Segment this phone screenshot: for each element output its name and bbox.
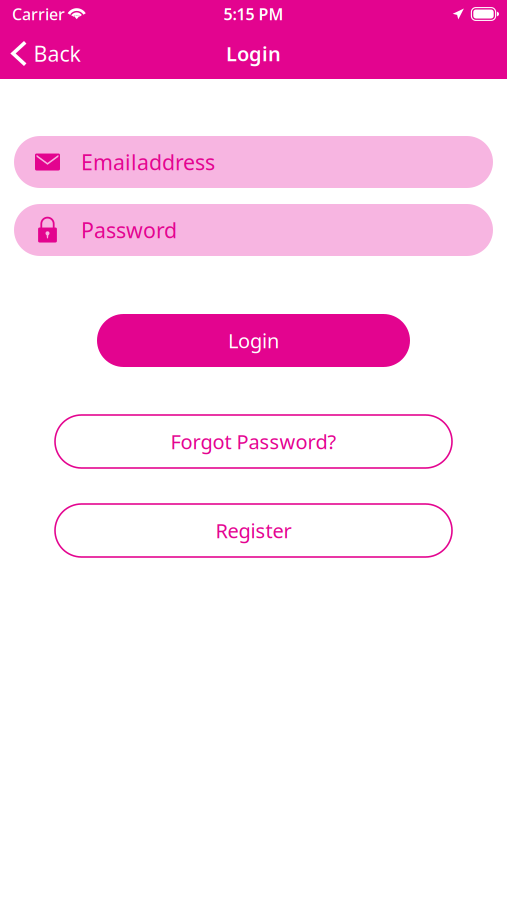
staticText: Carrier bbox=[12, 3, 65, 25]
button[interactable]: Login bbox=[97, 314, 410, 367]
staticText: Login bbox=[226, 40, 281, 67]
staticText: Emailaddress bbox=[81, 148, 215, 176]
staticText: Register bbox=[215, 517, 291, 544]
staticText: Password bbox=[81, 216, 177, 244]
staticText: Forgot Password? bbox=[170, 428, 336, 455]
button[interactable]: Back bbox=[0, 28, 90, 79]
button[interactable]: Register bbox=[55, 504, 452, 557]
staticText: Back bbox=[33, 39, 80, 68]
button[interactable]: Password bbox=[14, 204, 493, 256]
staticText: 5:15 PM bbox=[223, 3, 283, 25]
button[interactable]: Emailaddress bbox=[14, 136, 493, 188]
staticText: Login bbox=[228, 327, 279, 354]
button[interactable]: Forgot Password? bbox=[55, 415, 452, 468]
